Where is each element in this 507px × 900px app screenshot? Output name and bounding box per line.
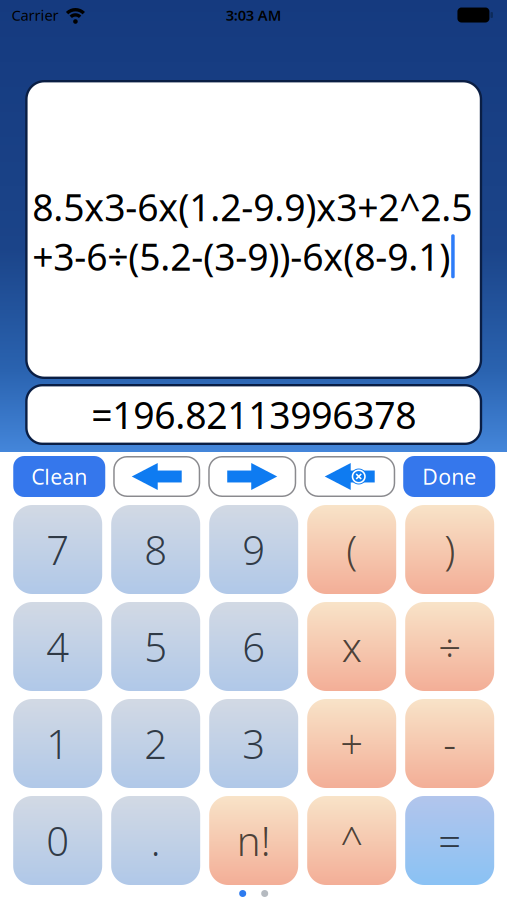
button[interactable]: Clean	[13, 456, 105, 497]
button[interactable]: 5	[111, 602, 200, 691]
button[interactable]: 8	[111, 505, 200, 594]
staticText: 9	[242, 523, 265, 576]
button[interactable]: Done	[403, 456, 495, 497]
staticText: +3-6÷(5.2-(3-9))-6x(8-9.1)	[32, 231, 450, 281]
button[interactable]: 6	[209, 602, 298, 691]
staticText: 8	[144, 523, 167, 576]
button[interactable]: Move cursor right	[208, 456, 296, 497]
staticText: 4	[46, 620, 69, 673]
staticText: Carrier	[11, 5, 58, 25]
button[interactable]: ÷	[405, 602, 494, 691]
button[interactable]: n!	[209, 796, 298, 885]
staticText: (	[346, 523, 357, 576]
button[interactable]: Delete	[304, 456, 395, 497]
staticText: =196.82113996378	[91, 390, 416, 439]
button[interactable]: ^	[307, 796, 396, 885]
staticText: ÷	[438, 620, 461, 673]
button[interactable]: =	[405, 796, 494, 885]
button[interactable]: 4	[13, 602, 102, 691]
staticText: )	[444, 523, 455, 576]
staticText: =	[438, 814, 461, 867]
staticText: +	[340, 717, 363, 770]
staticText: 3	[242, 717, 265, 770]
staticText: 8.5x3-6x(1.2-9.9)x3+2^2.5	[32, 182, 472, 231]
staticText: ^	[340, 814, 363, 867]
staticText: x	[342, 620, 362, 673]
button[interactable]: .	[111, 796, 200, 885]
button[interactable]: 2	[111, 699, 200, 788]
staticText: Clean	[31, 462, 87, 491]
button[interactable]: -	[405, 699, 494, 788]
button[interactable]: x	[307, 602, 396, 691]
staticText: 2	[144, 717, 167, 770]
staticText: 6	[242, 620, 265, 673]
button[interactable]: 7	[13, 505, 102, 594]
staticText: n!	[237, 814, 271, 867]
button[interactable]: 0	[13, 796, 102, 885]
button[interactable]: 3	[209, 699, 298, 788]
staticText: -	[443, 717, 456, 770]
button[interactable]: (	[307, 505, 396, 594]
button[interactable]: 9	[209, 505, 298, 594]
staticText: .	[151, 814, 161, 867]
staticText: 7	[46, 523, 69, 576]
button[interactable]: )	[405, 505, 494, 594]
staticText: 0	[46, 814, 69, 867]
button[interactable]: Move cursor left	[113, 456, 200, 497]
staticText: 3:03 AM	[226, 5, 282, 25]
staticText: Done	[422, 462, 476, 491]
button[interactable]: 1	[13, 699, 102, 788]
staticText: 5	[144, 620, 167, 673]
staticText: 1	[46, 717, 69, 770]
button[interactable]: +	[307, 699, 396, 788]
